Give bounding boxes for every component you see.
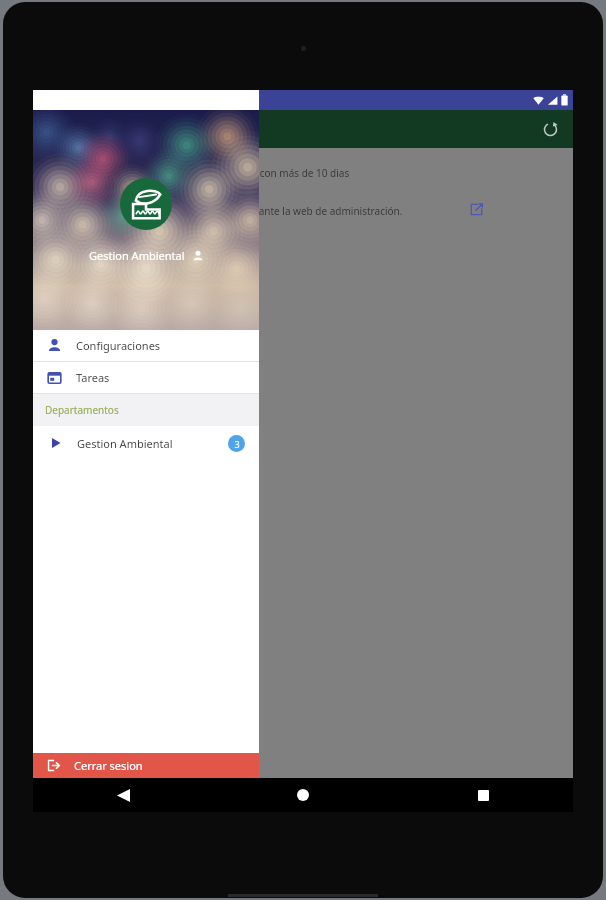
button[interactable]: Recent apps: [466, 778, 500, 812]
staticText: 3: [234, 438, 240, 450]
staticText: Puede configurar este comportamiento med…: [47, 204, 403, 218]
button[interactable]: Home: [286, 778, 320, 812]
button[interactable]: Gestion Ambiental: [33, 426, 259, 460]
button[interactable]: Open web administration: [463, 196, 489, 222]
button[interactable]: Tareas: [33, 362, 259, 393]
button[interactable]: Refresh: [535, 114, 565, 144]
button[interactable]: App logo: [120, 178, 172, 230]
staticText: Gestion Ambiental: [89, 248, 185, 263]
button[interactable]: Configuraciones: [33, 330, 259, 361]
staticText: Tareas: [76, 370, 110, 385]
button[interactable]: Back: [106, 778, 140, 812]
staticText: Departamentos: [45, 403, 119, 417]
staticText: Cerrar sesion: [74, 758, 143, 773]
staticText: Gestion Ambiental: [77, 436, 173, 451]
staticText: Se eliminarán automáticamente los regist…: [47, 166, 350, 180]
button[interactable]: Cerrar sesion: [33, 753, 259, 778]
staticText: Configuraciones: [76, 338, 161, 353]
